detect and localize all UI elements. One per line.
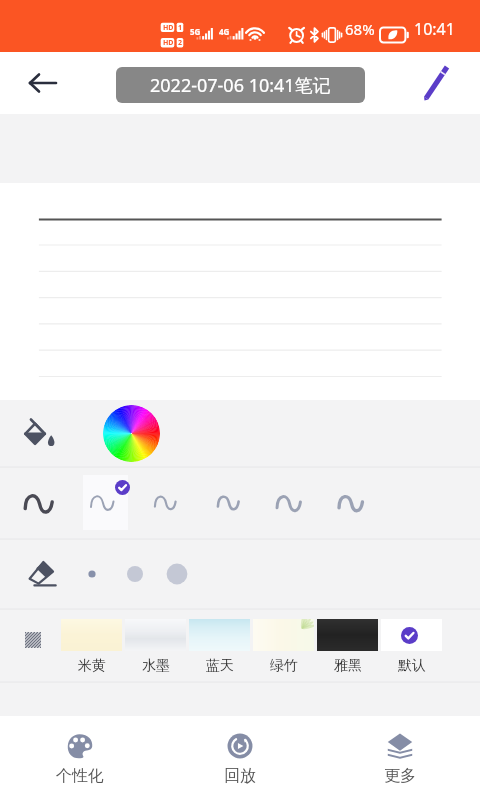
- button[interactable]: Eraser size: [115, 554, 155, 594]
- staticText: 绿竹: [270, 657, 298, 675]
- button[interactable]: Colour wheel: [103, 405, 160, 462]
- staticText: 回放: [224, 766, 256, 786]
- button[interactable]: 默认: [381, 619, 442, 675]
- staticText: 2: [178, 38, 183, 47]
- staticText: 蓝天: [206, 657, 234, 675]
- staticText: 默认: [398, 657, 426, 675]
- staticText: HD: [163, 23, 174, 32]
- button[interactable]: 水墨: [125, 619, 186, 675]
- button[interactable]: Brush 4: [206, 475, 251, 530]
- staticText: 更多: [384, 766, 416, 786]
- button[interactable]: Paper texture: [16, 623, 50, 657]
- button[interactable]: 更多: [320, 716, 480, 800]
- button[interactable]: Brush 3: [143, 475, 188, 530]
- button[interactable]: Brush 6: [328, 475, 373, 530]
- staticText: 雅黑: [334, 657, 362, 675]
- staticText: 10:41: [414, 18, 455, 40]
- button[interactable]: Brush 1: [16, 475, 61, 530]
- button[interactable]: 米黄: [61, 619, 122, 675]
- button[interactable]: 2022-07-06 10:41笔记: [116, 67, 365, 103]
- button[interactable]: 个性化: [0, 716, 160, 800]
- staticText: HD: [163, 38, 174, 47]
- button[interactable]: Back: [20, 61, 64, 105]
- button[interactable]: Fill colour: [18, 411, 62, 455]
- button[interactable]: Eraser: [19, 552, 63, 596]
- staticText: 米黄: [78, 657, 106, 675]
- button[interactable]: Brush 5: [266, 475, 311, 530]
- staticText: 5G: [190, 26, 201, 37]
- staticText: 68%: [345, 19, 375, 39]
- button[interactable]: Edit: [411, 59, 459, 107]
- button[interactable]: 蓝天: [189, 619, 250, 675]
- button[interactable]: Eraser size: [157, 554, 197, 594]
- button[interactable]: 绿竹: [253, 619, 314, 675]
- staticText: 水墨: [142, 657, 170, 675]
- staticText: 1: [178, 23, 183, 32]
- staticText: 个性化: [56, 766, 104, 786]
- button[interactable]: Brush 2: [80, 475, 125, 530]
- staticText: 4G: [219, 26, 230, 37]
- button[interactable]: Eraser size: [72, 554, 112, 594]
- button[interactable]: 雅黑: [317, 619, 378, 675]
- button[interactable]: 回放: [160, 716, 320, 800]
- staticText: 2022-07-06 10:41笔记: [150, 73, 331, 98]
